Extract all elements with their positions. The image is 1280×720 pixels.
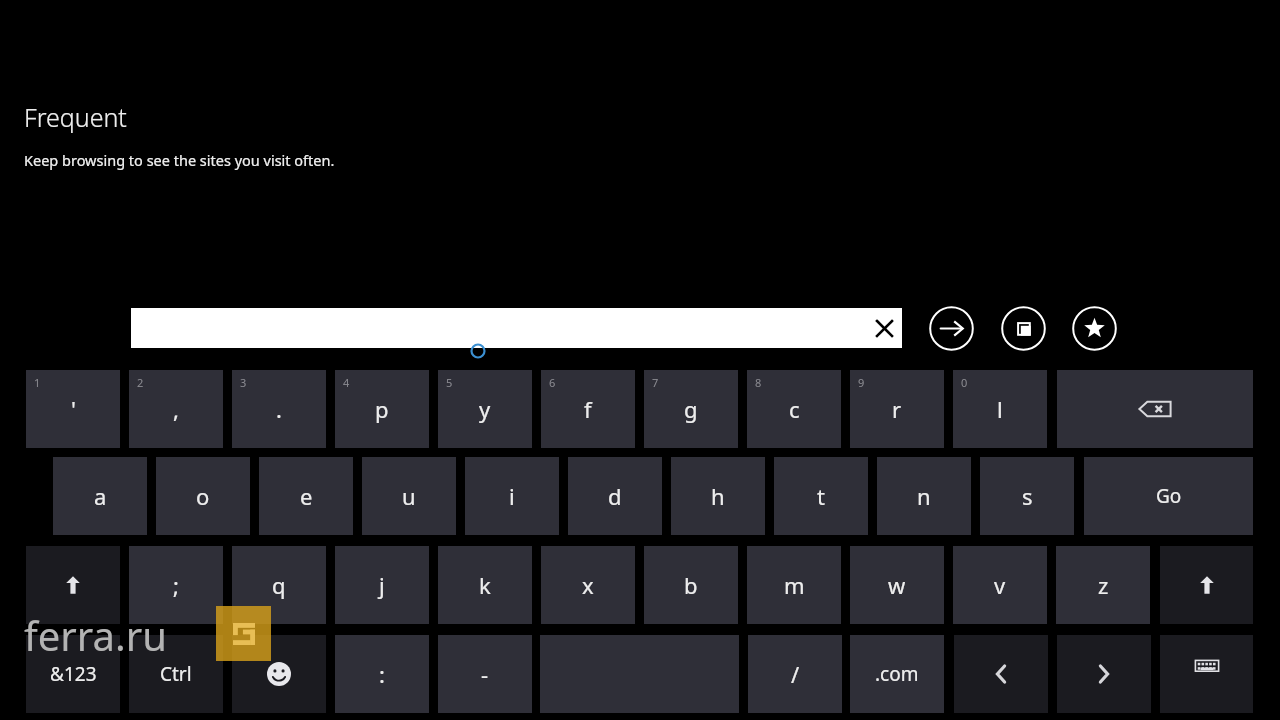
button[interactable]: a [53,457,147,535]
button[interactable]: Go [1084,457,1253,535]
button[interactable]: 4 [335,370,429,448]
staticText: ferra.ru [24,608,167,662]
button[interactable]: 8 [747,370,841,448]
staticText: x [582,570,594,600]
staticText: 9 [858,375,865,390]
staticText: 2 [137,375,144,390]
button[interactable]: ; [129,546,223,624]
staticText: k [479,570,491,600]
button[interactable]: b [644,546,738,624]
button[interactable]: m [747,546,841,624]
staticText: c [789,394,800,424]
staticText: 6 [549,375,556,390]
staticText: p [375,394,389,424]
button[interactable]: v [953,546,1047,624]
button[interactable]: Go [929,306,974,351]
button[interactable]: o [156,457,250,535]
button[interactable]: .com [850,635,944,713]
button[interactable]: 7 [644,370,738,448]
staticText: 8 [755,375,762,390]
staticText: t [817,481,825,511]
staticText: ; [173,570,179,600]
staticText: y [479,394,491,424]
staticText: a [94,481,107,511]
staticText: Go [1156,483,1182,509]
staticText: j [379,570,385,600]
staticText: l [997,394,1003,424]
button[interactable]: Clear address [866,310,902,346]
button[interactable]: / [748,635,842,713]
button[interactable]: &123 [26,635,120,713]
staticText: h [711,481,725,511]
button[interactable]: k [438,546,532,624]
button[interactable]: 5 [438,370,532,448]
button[interactable]: Previous [954,635,1048,713]
button[interactable]: Ctrl [129,635,223,713]
button[interactable]: Tabs [1001,306,1046,351]
staticText: q [272,570,286,600]
button[interactable]: Shift [1160,546,1253,624]
button[interactable]: : [335,635,429,713]
staticText: Ctrl [160,661,192,687]
staticText: ' [71,394,76,424]
button[interactable]: 0 [953,370,1047,448]
staticText: Keep browsing to see the sites you visit… [24,150,335,170]
staticText: - [481,659,489,689]
button[interactable]: Favorites [1072,306,1117,351]
button[interactable]: - [438,635,532,713]
button[interactable]: z [1056,546,1150,624]
button[interactable]: 9 [850,370,944,448]
button[interactable]: Shift [26,546,120,624]
button[interactable]: e [259,457,353,535]
staticText: 1 [34,375,41,390]
staticText: 4 [343,375,350,390]
button[interactable]: q [232,546,326,624]
button[interactable]: Clear address [131,308,902,348]
staticText: z [1098,570,1109,600]
button[interactable]: Change keyboard [1160,635,1253,713]
button[interactable]: 2 [129,370,223,448]
staticText: 0 [961,375,968,390]
button[interactable]: u [362,457,456,535]
button[interactable]: d [568,457,662,535]
staticText: i [509,481,515,511]
button[interactable]: j [335,546,429,624]
staticText: : [379,659,385,689]
button[interactable]: Backspace [1057,370,1253,448]
button[interactable]: 3 [232,370,326,448]
staticText: g [684,394,698,424]
staticText: , [173,394,179,424]
staticText: / [791,659,800,689]
staticText: w [888,570,906,600]
staticText: &123 [50,661,97,687]
staticText: e [300,481,313,511]
staticText: 3 [240,375,247,390]
staticText: f [584,394,592,424]
staticText: 7 [652,375,659,390]
staticText: m [784,570,805,600]
button[interactable]: x [541,546,635,624]
button[interactable]: Next [1057,635,1151,713]
button[interactable]: n [877,457,971,535]
staticText: v [994,570,1006,600]
staticText: d [608,481,622,511]
button[interactable]: w [850,546,944,624]
staticText: 5 [446,375,453,390]
staticText: s [1022,481,1033,511]
button[interactable]: t [774,457,868,535]
button[interactable]: h [671,457,765,535]
button[interactable]: s [980,457,1074,535]
button[interactable]: 1 [26,370,120,448]
button[interactable]: Emoji [232,635,326,713]
staticText: b [684,570,698,600]
staticText: Frequent [24,100,127,134]
staticText: r [892,394,902,424]
button[interactable]: 6 [541,370,635,448]
staticText: .com [875,661,919,687]
button[interactable]: i [465,457,559,535]
staticText: u [402,481,416,511]
staticText: . [276,394,282,424]
staticText: n [917,481,931,511]
